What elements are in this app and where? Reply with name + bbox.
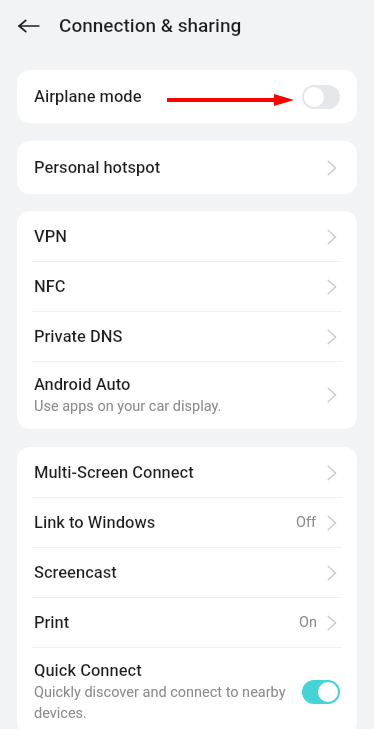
- staticText: Android Auto: [34, 375, 131, 394]
- staticText: Link to Windows: [34, 513, 156, 532]
- button[interactable]: VPN: [17, 212, 357, 261]
- button[interactable]: Toggle: [302, 85, 340, 109]
- staticText: Personal hotspot: [34, 158, 161, 177]
- staticText: Multi-Screen Connect: [34, 463, 194, 482]
- staticText: Quickly discover and connect to nearby d…: [34, 680, 302, 722]
- staticText: Screencast: [34, 563, 117, 582]
- button[interactable]: Android Auto: [17, 362, 357, 428]
- button[interactable]: Quick Connect: [17, 648, 357, 729]
- staticText: Print: [34, 613, 70, 632]
- staticText: NFC: [34, 277, 66, 296]
- button[interactable]: Personal hotspot: [17, 143, 357, 192]
- button[interactable]: Print: [17, 598, 357, 647]
- staticText: Quick Connect: [34, 661, 142, 680]
- button[interactable]: Multi-Screen Connect: [17, 448, 357, 497]
- button[interactable]: NFC: [17, 262, 357, 311]
- button[interactable]: Screencast: [17, 548, 357, 597]
- button[interactable]: Link to Windows: [17, 498, 357, 547]
- staticText: On: [299, 614, 317, 631]
- staticText: VPN: [34, 227, 67, 246]
- staticText: Off: [296, 514, 317, 531]
- staticText: Private DNS: [34, 327, 123, 346]
- staticText: Use apps on your car display.: [34, 394, 222, 415]
- staticText: Connection & sharing: [59, 14, 242, 36]
- staticText: Airplane mode: [34, 87, 142, 106]
- button[interactable]: Airplane mode: [17, 72, 357, 121]
- button[interactable]: Toggle: [302, 680, 340, 704]
- button[interactable]: Back: [9, 6, 49, 46]
- button[interactable]: Private DNS: [17, 312, 357, 361]
